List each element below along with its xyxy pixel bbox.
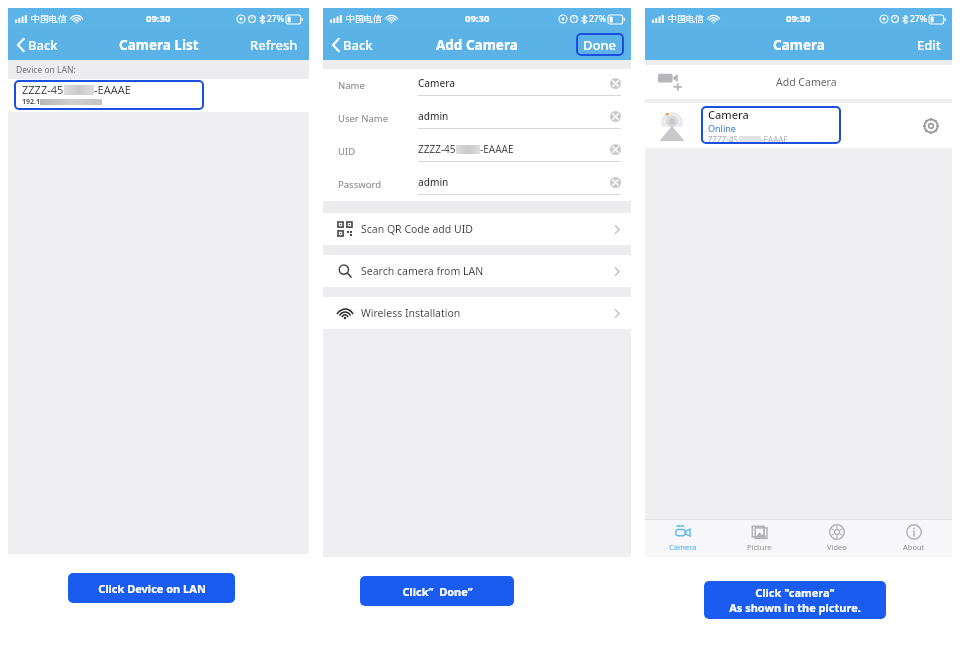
- staticText: Name: [338, 79, 365, 92]
- staticText: Search camera from LAN: [361, 264, 484, 278]
- staticText: 中国电信: [346, 13, 382, 24]
- staticText: UID: [338, 145, 356, 158]
- button[interactable]: Search camera from LAN: [323, 255, 631, 287]
- button[interactable]: Back: [329, 33, 376, 57]
- button[interactable]: Clear User Name: [610, 111, 621, 122]
- staticText: Video: [827, 542, 847, 552]
- button[interactable]: Refresh: [247, 33, 301, 57]
- staticText: Camera List: [119, 36, 199, 54]
- button[interactable]: Add Camera: [645, 65, 952, 99]
- staticText: Click” Done”: [402, 584, 473, 599]
- staticText: Camera: [773, 36, 825, 54]
- staticText: Click Device on LAN: [98, 581, 206, 596]
- staticText: ZZZZ-45: [22, 82, 64, 97]
- button[interactable]: Camera: [645, 519, 721, 557]
- button[interactable]: Camera: [701, 106, 841, 144]
- staticText: Add Camera: [776, 75, 837, 89]
- staticText: Camera: [669, 542, 697, 552]
- button[interactable]: Wireless Installation: [323, 297, 631, 329]
- staticText: Edit: [917, 36, 941, 54]
- button[interactable]: Picture: [721, 519, 798, 557]
- staticText: 192.1: [22, 97, 40, 107]
- button[interactable]: Video: [798, 519, 875, 557]
- staticText: 27%: [589, 13, 606, 25]
- staticText: 中国电信: [31, 13, 67, 24]
- staticText: 09:30: [465, 12, 490, 25]
- staticText: Password: [338, 178, 381, 191]
- button[interactable]: About: [875, 519, 952, 557]
- staticText: ZZZZ-45: [418, 142, 456, 156]
- staticText: 09:30: [146, 12, 171, 25]
- staticText: Done: [583, 36, 617, 54]
- staticText: Wireless Installation: [361, 306, 461, 320]
- staticText: Add Camera: [436, 36, 518, 54]
- button[interactable]: Settings: [922, 117, 940, 135]
- button[interactable]: Clear Name: [610, 78, 621, 89]
- staticText: 27%: [267, 13, 284, 25]
- button[interactable]: Clear UID: [610, 144, 621, 155]
- button[interactable]: Click” Done”: [360, 576, 514, 606]
- staticText: -EAAAE: [761, 134, 788, 144]
- staticText: Camera: [708, 107, 749, 122]
- button[interactable]: Scan QR Code add UID: [323, 213, 631, 245]
- staticText: Scan QR Code add UID: [361, 222, 473, 236]
- button[interactable]: ZZZZ-45: [14, 80, 204, 110]
- staticText: admin: [418, 175, 449, 189]
- staticText: Online: [708, 122, 736, 134]
- staticText: Back: [28, 36, 58, 54]
- staticText: -EAAAE: [94, 82, 131, 97]
- staticText: -EAAAE: [480, 142, 514, 156]
- button[interactable]: Click "camera": [704, 581, 886, 619]
- button[interactable]: Back: [14, 33, 61, 57]
- staticText: Camera: [418, 76, 456, 90]
- staticText: 27%: [910, 13, 927, 25]
- staticText: Refresh: [250, 36, 298, 54]
- button[interactable]: Clear Password: [610, 177, 621, 188]
- staticText: Device on LAN:: [16, 64, 76, 76]
- staticText: User Name: [338, 112, 389, 125]
- staticText: 09:30: [786, 12, 811, 25]
- staticText: Back: [343, 36, 373, 54]
- button[interactable]: Done: [576, 33, 624, 56]
- staticText: ZZZZ-45: [708, 134, 739, 144]
- staticText: Picture: [747, 542, 772, 552]
- staticText: admin: [418, 109, 449, 123]
- staticText: Click "camera": [755, 585, 835, 600]
- staticText: As shown in the picture.: [729, 600, 861, 615]
- staticText: About: [903, 542, 925, 552]
- button[interactable]: Click Device on LAN: [68, 573, 235, 603]
- staticText: 中国电信: [668, 13, 704, 24]
- button[interactable]: Edit: [914, 33, 944, 57]
